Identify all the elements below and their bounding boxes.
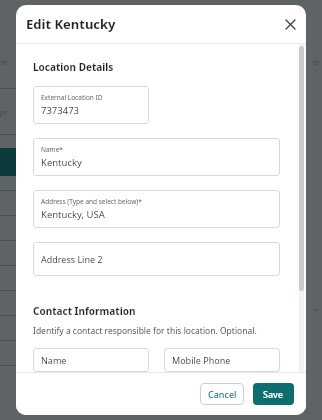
staticText: Edit Kentucky <box>26 15 116 33</box>
staticText: Address (Type and select below)* <box>41 197 142 206</box>
staticText: Cancel <box>208 388 237 400</box>
staticText: Save <box>263 388 284 400</box>
staticText: Mobile Phone <box>172 354 231 366</box>
staticText: Location Details <box>33 60 114 74</box>
button[interactable]: Close <box>280 14 300 34</box>
staticText: pr <box>0 108 8 118</box>
staticText: m <box>1 58 8 68</box>
button[interactable]: Save <box>253 383 294 405</box>
staticText: 7373473 <box>41 104 80 117</box>
staticText: er <box>313 58 320 68</box>
button[interactable]: Name* <box>33 138 280 176</box>
button[interactable]: Address Line 2 <box>33 242 280 276</box>
staticText: Name* <box>41 145 63 154</box>
staticText: = <box>314 305 319 315</box>
button[interactable]: Cancel <box>200 383 244 405</box>
staticText: Identify a contact responsible for this … <box>33 325 257 337</box>
button[interactable]: Address (Type and select below)* <box>33 190 280 228</box>
staticText: Kentucky <box>41 156 82 169</box>
staticText: External Location ID <box>41 93 103 102</box>
button[interactable]: Mobile Phone <box>164 348 280 372</box>
staticText: Kentucky, USA <box>41 208 105 221</box>
staticText: Contact Information <box>33 304 136 318</box>
staticText: Name <box>41 354 67 366</box>
button[interactable]: External Location ID <box>33 86 149 124</box>
button[interactable]: Name <box>33 348 149 372</box>
staticText: Address Line 2 <box>41 253 103 265</box>
